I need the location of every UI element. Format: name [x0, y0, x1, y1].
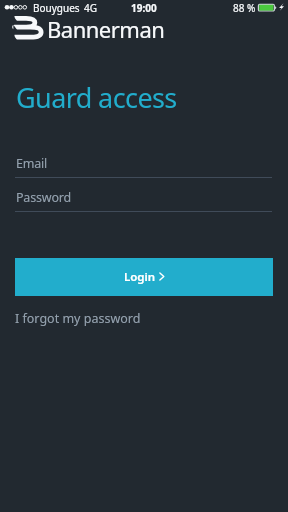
staticText: Password: [16, 189, 71, 206]
staticText: 19:00: [131, 1, 157, 15]
button[interactable]: Password: [0, 189, 288, 212]
other: Bannerman logo: [14, 14, 46, 42]
staticText: Email: [16, 155, 48, 172]
button[interactable]: Email: [0, 155, 288, 178]
staticText: 4G: [84, 1, 97, 15]
staticText: Bouygues: [33, 1, 80, 15]
staticText: 88 %: [233, 1, 256, 15]
button[interactable]: Login: [15, 258, 273, 296]
staticText: Bannerman: [47, 14, 165, 44]
button[interactable]: I forgot my password: [15, 310, 141, 327]
staticText: Guard access: [16, 79, 177, 116]
staticText: Login: [124, 269, 156, 285]
